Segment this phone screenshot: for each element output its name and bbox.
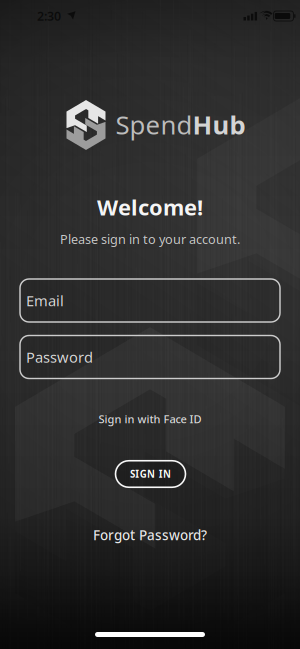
staticText: Please sign in to your account. — [60, 230, 240, 248]
button[interactable]: Password — [20, 335, 280, 378]
staticText: Welcome! — [97, 192, 203, 222]
staticText: SIGN IN — [130, 467, 171, 481]
staticText: Hub — [192, 107, 245, 142]
staticText: Spend — [115, 107, 192, 142]
button[interactable]: Sign in with Face ID — [98, 411, 201, 427]
button[interactable]: SIGN IN — [115, 461, 185, 487]
button[interactable]: Forgot Password? — [93, 526, 207, 544]
staticText: Email — [26, 290, 64, 310]
staticText: Sign in with Face ID — [98, 411, 201, 427]
staticText: 2:30 — [37, 8, 61, 24]
staticText: Password — [26, 347, 93, 367]
staticText: Forgot Password? — [93, 526, 207, 544]
button[interactable]: Email — [20, 279, 280, 322]
